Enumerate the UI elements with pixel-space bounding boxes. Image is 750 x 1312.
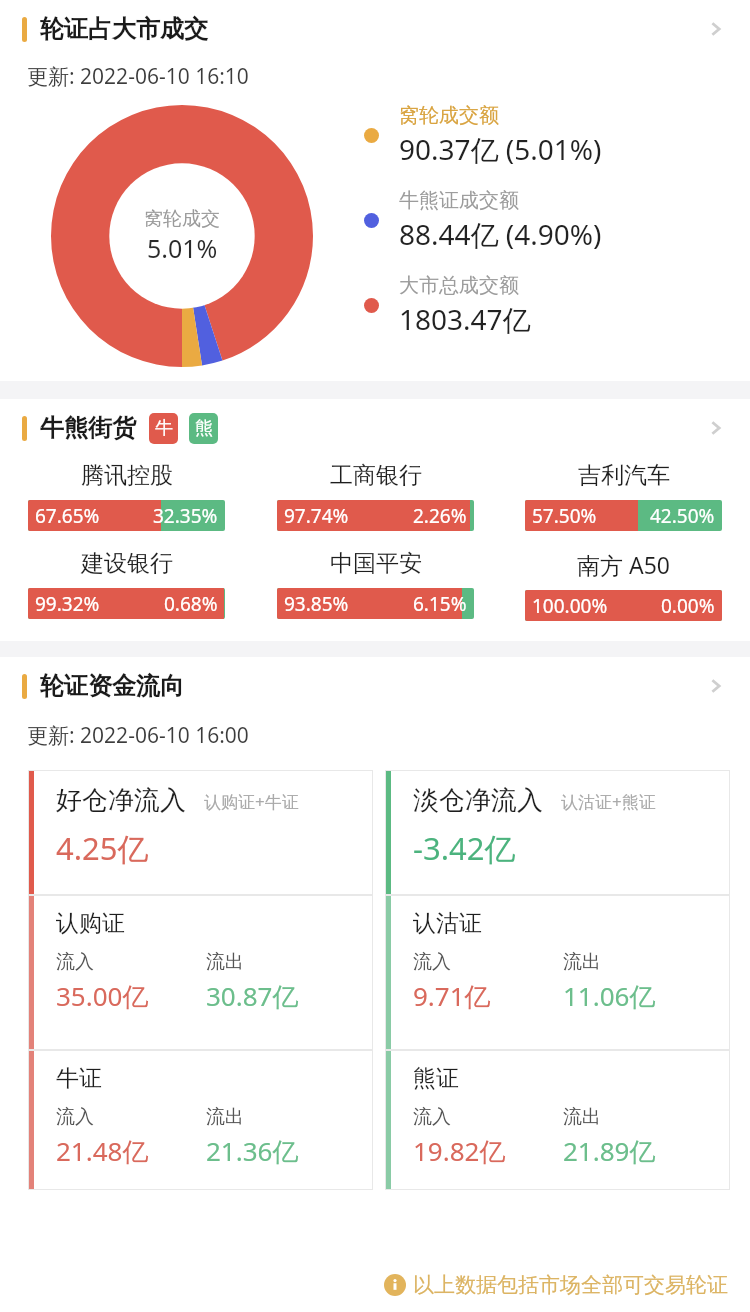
staticText: 19.82亿 xyxy=(413,1133,506,1169)
staticText: 流入 xyxy=(413,950,451,974)
staticText: 熊证 xyxy=(413,1064,459,1093)
button[interactable]: 腾讯控股 xyxy=(28,461,225,531)
staticText: 建设银行 xyxy=(81,549,173,578)
staticText: 9.71亿 xyxy=(413,978,491,1014)
staticText: 淡仓净流入 xyxy=(413,784,543,817)
staticText: 流出 xyxy=(206,950,244,974)
button[interactable]: 工商银行 xyxy=(277,461,474,531)
staticText: 90.37亿 (5.01%) xyxy=(399,130,602,168)
staticText: 中国平安 xyxy=(330,549,422,578)
button[interactable]: 建设银行 xyxy=(28,549,225,619)
staticText: 流出 xyxy=(563,1105,601,1129)
staticText: 11.06亿 xyxy=(563,978,656,1014)
button[interactable]: 牛熊证成交额 xyxy=(364,188,750,253)
staticText: 2.26% xyxy=(413,503,467,529)
staticText: 轮证占大市成交 xyxy=(40,14,208,44)
button[interactable]: 认购证 xyxy=(28,895,373,1050)
staticText: 认沽证 xyxy=(413,909,482,938)
staticText: 21.36亿 xyxy=(206,1133,299,1169)
staticText: 35.00亿 xyxy=(56,978,149,1014)
staticText: 流入 xyxy=(56,950,94,974)
staticText: 93.85% xyxy=(284,591,349,617)
staticText: 99.32% xyxy=(35,591,100,617)
staticText: 6.15% xyxy=(413,591,467,617)
button[interactable]: 轮证占大市成交 xyxy=(0,0,750,58)
staticText: 腾讯控股 xyxy=(81,461,173,490)
staticText: 轮证资金流向 xyxy=(40,671,184,701)
other: More xyxy=(702,415,728,441)
button[interactable]: 中国平安 xyxy=(277,549,474,619)
staticText: 100.00% xyxy=(532,593,608,619)
staticText: 认购证 xyxy=(56,909,125,938)
staticText: 牛熊街货 xyxy=(40,413,136,443)
staticText: 窝轮成交额 xyxy=(399,103,499,128)
staticText: 牛证 xyxy=(56,1064,102,1093)
button[interactable]: 牛熊街货 xyxy=(0,399,750,457)
staticText: 流入 xyxy=(413,1105,451,1129)
staticText: 21.89亿 xyxy=(563,1133,656,1169)
other: More xyxy=(702,673,728,699)
button[interactable]: 认沽证 xyxy=(385,895,730,1050)
staticText: 牛熊证成交额 xyxy=(399,188,519,213)
button[interactable]: 轮证资金流向 xyxy=(0,657,750,715)
staticText: -3.42亿 xyxy=(413,827,516,869)
button[interactable]: 南方 A50 xyxy=(525,549,722,621)
staticText: 57.50% xyxy=(532,503,597,529)
staticText: 牛 xyxy=(155,417,173,440)
button[interactable]: 窝轮成交额 xyxy=(364,103,750,168)
staticText: 21.48亿 xyxy=(56,1133,149,1169)
staticText: 窝轮成交 xyxy=(144,207,220,231)
button[interactable]: 牛证 xyxy=(28,1050,373,1190)
staticText: 97.74% xyxy=(284,503,349,529)
staticText: 熊 xyxy=(195,417,213,440)
staticText: 4.25亿 xyxy=(56,827,149,869)
staticText: 更新: 2022-06-10 16:10 xyxy=(27,62,249,91)
staticText: 工商银行 xyxy=(330,461,422,490)
staticText: 流入 xyxy=(56,1105,94,1129)
staticText: 认购证+牛证 xyxy=(204,790,299,813)
staticText: 大市总成交额 xyxy=(399,273,519,298)
staticText: 30.87亿 xyxy=(206,978,299,1014)
staticText: 更新: 2022-06-10 16:00 xyxy=(27,721,249,750)
staticText: 流出 xyxy=(563,950,601,974)
staticText: 5.01% xyxy=(147,231,218,265)
staticText: 32.35% xyxy=(153,503,218,529)
staticText: 好仓净流入 xyxy=(56,784,186,817)
button[interactable]: 吉利汽车 xyxy=(525,461,722,531)
staticText: 0.68% xyxy=(164,591,218,617)
staticText: 0.00% xyxy=(661,593,715,619)
button[interactable]: 熊证 xyxy=(385,1050,730,1190)
button[interactable]: 大市总成交额 xyxy=(364,273,750,338)
staticText: 以上数据包括市场全部可交易轮证 xyxy=(413,1272,728,1298)
staticText: 67.65% xyxy=(35,503,100,529)
button[interactable]: 好仓净流入 xyxy=(28,770,373,895)
button[interactable]: 淡仓净流入 xyxy=(385,770,730,895)
staticText: 88.44亿 (4.90%) xyxy=(399,215,602,253)
staticText: 南方 A50 xyxy=(577,549,670,580)
staticText: 认沽证+熊证 xyxy=(561,790,656,813)
staticText: 1803.47亿 xyxy=(399,300,531,338)
staticText: 吉利汽车 xyxy=(578,461,670,490)
other: More xyxy=(702,16,728,42)
staticText: 42.50% xyxy=(650,503,715,529)
staticText: 流出 xyxy=(206,1105,244,1129)
